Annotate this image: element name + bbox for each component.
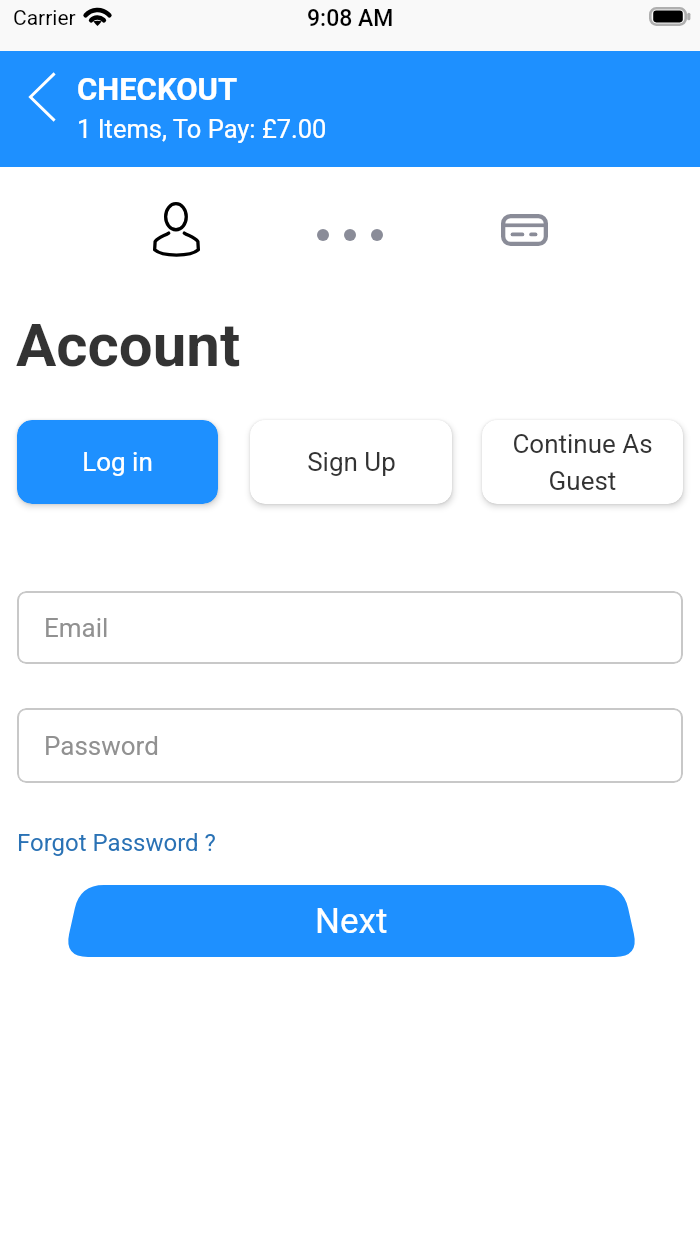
staticText: Account [16,310,241,380]
button[interactable]: Sign Up [250,420,452,504]
staticText: Continue As Guest [482,429,683,496]
button[interactable]: Log in [17,420,218,504]
staticText: Forgot Password ? [17,829,216,857]
button[interactable]: Next [64,885,639,957]
button[interactable]: Email [17,591,683,664]
other: Account step [153,202,200,256]
button[interactable]: Forgot Password ? [17,829,216,857]
staticText: Password [44,731,159,761]
staticText: Log in [82,447,153,477]
staticText: CHECKOUT [77,71,238,107]
staticText: Carrier [13,6,76,31]
staticText: Email [44,613,109,643]
other: Battery full [649,7,691,26]
button[interactable]: Continue As Guest [482,420,683,504]
other: Wi-Fi signal [84,5,111,27]
staticText: 1 Items, To Pay: £7.00 [77,114,327,144]
staticText: 9:08 AM [307,5,394,32]
staticText: Next [315,901,388,942]
button[interactable]: Password [17,708,683,783]
button[interactable]: Back [13,59,71,141]
other: Payment step [501,214,548,246]
staticText: Sign Up [307,447,396,477]
